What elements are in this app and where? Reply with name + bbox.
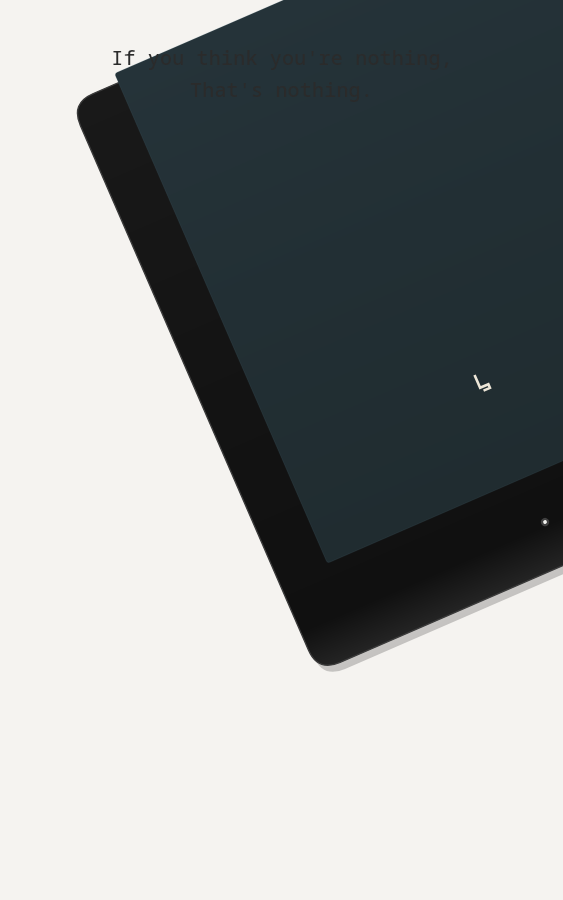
- staticText: That's nothing.: [190, 76, 373, 103]
- staticText: If you think you're nothing,: [111, 44, 453, 71]
